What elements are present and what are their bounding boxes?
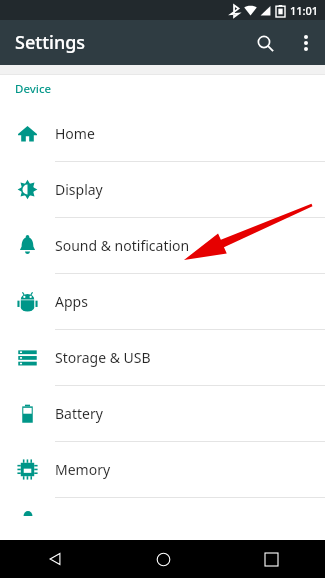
staticText: Sound & notification (55, 236, 190, 255)
staticText: Memory (55, 460, 111, 479)
button[interactable]: Back (0, 540, 109, 578)
staticText: Display (55, 180, 103, 199)
button[interactable]: Apps (0, 274, 325, 330)
button[interactable]: More options (287, 24, 325, 62)
button[interactable]: Storage & USB (0, 330, 325, 386)
staticText: Storage & USB (55, 348, 151, 367)
button[interactable]: Recent apps (217, 540, 325, 578)
button[interactable]: Battery (0, 386, 325, 442)
staticText: 11:01 (290, 3, 319, 18)
staticText: Apps (55, 292, 88, 311)
staticText: Settings (15, 30, 86, 55)
button[interactable]: Search (243, 21, 287, 65)
button[interactable]: Home (109, 540, 217, 578)
staticText: Device (15, 81, 52, 97)
button[interactable]: Memory (0, 442, 325, 498)
button[interactable] (0, 498, 325, 528)
staticText: Home (55, 124, 95, 143)
button[interactable]: Home (0, 106, 325, 162)
staticText: Battery (55, 404, 103, 423)
button[interactable]: Sound & notification (0, 218, 325, 274)
button[interactable]: Display (0, 162, 325, 218)
